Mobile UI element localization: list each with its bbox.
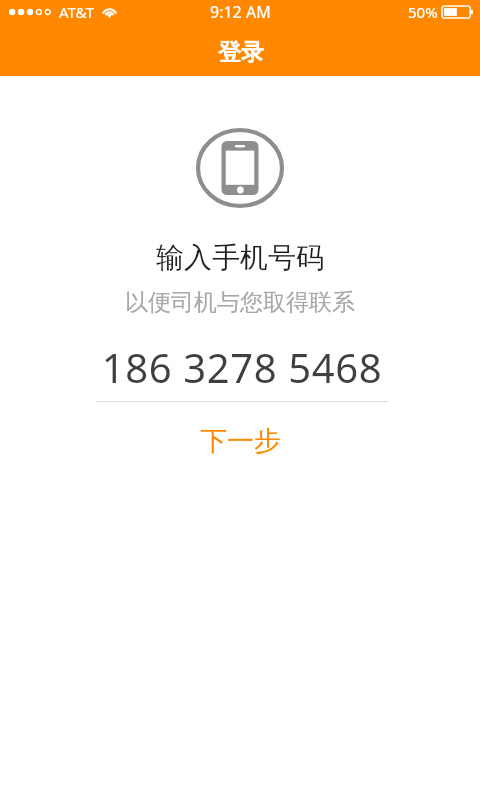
staticText: 以便司机与您取得联系 — [0, 288, 480, 317]
staticText: AT&T — [59, 2, 94, 22]
staticText: 登录 — [218, 38, 264, 67]
other: Wi-Fi signal — [102, 5, 117, 17]
button[interactable]: 186 3278 5468 — [0, 340, 480, 402]
staticText: 50% — [408, 2, 438, 22]
staticText: 186 3278 5468 — [2, 340, 480, 394]
other: Phone number — [0, 125, 480, 211]
other: Battery 50 percent — [442, 6, 473, 18]
staticText: 下一步 — [200, 424, 281, 458]
staticText: 输入手机号码 — [0, 240, 480, 275]
button[interactable]: 下一步 — [0, 418, 480, 464]
staticText: 9:12 AM — [210, 1, 271, 23]
